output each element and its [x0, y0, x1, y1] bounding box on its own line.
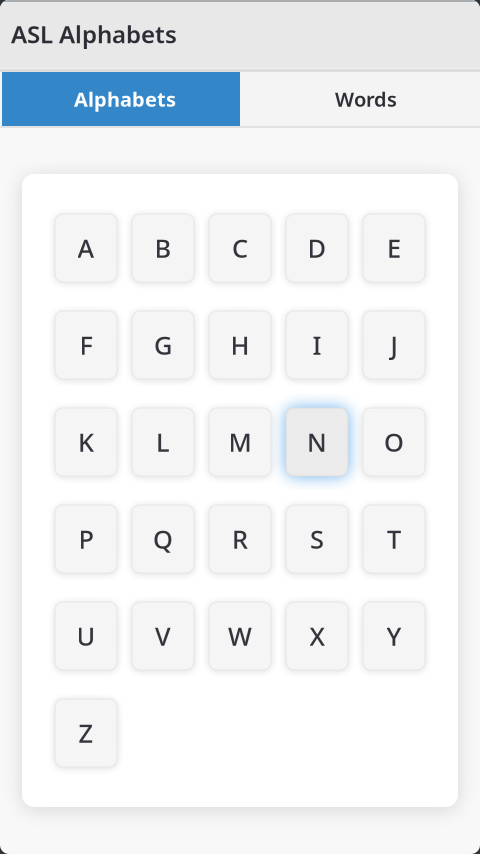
staticText: D	[307, 231, 326, 265]
button[interactable]: V	[132, 602, 194, 670]
button[interactable]: J	[363, 311, 425, 379]
staticText: E	[387, 231, 401, 265]
staticText: A	[77, 231, 94, 265]
staticText: W	[228, 619, 252, 653]
button[interactable]: F	[55, 311, 117, 379]
staticText: Z	[78, 716, 93, 750]
staticText: Words	[335, 86, 397, 112]
button[interactable]: X	[286, 602, 348, 670]
button[interactable]: Y	[363, 602, 425, 670]
staticText: O	[384, 425, 404, 459]
button[interactable]: W	[209, 602, 271, 670]
button[interactable]: K	[55, 408, 117, 476]
button[interactable]: L	[132, 408, 194, 476]
staticText: H	[230, 328, 249, 362]
staticText: F	[79, 328, 92, 362]
button[interactable]: I	[286, 311, 348, 379]
button[interactable]: N	[286, 408, 348, 476]
button[interactable]: O	[363, 408, 425, 476]
button[interactable]: Words	[240, 72, 480, 126]
button[interactable]: M	[209, 408, 271, 476]
staticText: U	[76, 619, 95, 653]
button[interactable]: D	[286, 214, 348, 282]
button[interactable]: H	[209, 311, 271, 379]
staticText: Alphabets	[74, 86, 176, 112]
button[interactable]: T	[363, 505, 425, 573]
staticText: T	[387, 522, 401, 556]
staticText: M	[228, 425, 251, 459]
button[interactable]: E	[363, 214, 425, 282]
staticText: K	[78, 425, 94, 459]
staticText: J	[390, 328, 397, 362]
button[interactable]: P	[55, 505, 117, 573]
button[interactable]: A	[55, 214, 117, 282]
staticText: P	[78, 522, 93, 556]
staticText: C	[232, 231, 248, 265]
staticText: ASL Alphabets	[11, 18, 177, 50]
button[interactable]: Alphabets	[0, 72, 240, 126]
staticText: B	[154, 231, 171, 265]
button[interactable]: C	[209, 214, 271, 282]
staticText: N	[307, 425, 327, 459]
button[interactable]: S	[286, 505, 348, 573]
button[interactable]: Z	[55, 699, 117, 767]
button[interactable]: R	[209, 505, 271, 573]
button[interactable]: B	[132, 214, 194, 282]
button[interactable]: U	[55, 602, 117, 670]
staticText: V	[155, 619, 171, 653]
staticText: L	[156, 425, 170, 459]
button[interactable]: Q	[132, 505, 194, 573]
staticText: R	[232, 522, 248, 556]
staticText: Y	[386, 619, 401, 653]
staticText: Q	[153, 522, 173, 556]
button[interactable]: G	[132, 311, 194, 379]
staticText: I	[312, 328, 321, 362]
staticText: S	[310, 522, 324, 556]
staticText: G	[154, 328, 172, 362]
staticText: X	[309, 619, 324, 653]
